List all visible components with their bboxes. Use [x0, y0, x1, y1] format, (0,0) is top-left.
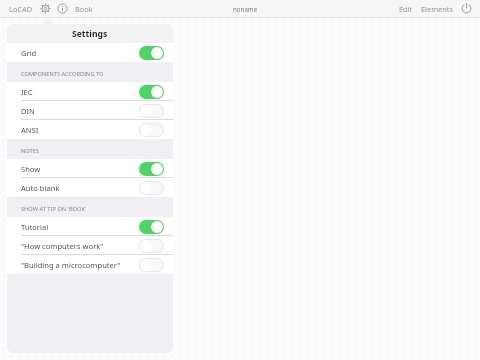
button[interactable]: LoCAD: [5, 1, 37, 17]
staticText: SHOW AT TIP ON 'BOOK': [21, 205, 87, 213]
button[interactable]: Show: [7, 159, 173, 178]
staticText: Settings: [72, 28, 108, 40]
button[interactable]: Power: [458, 0, 475, 17]
button[interactable]: Grid: [7, 43, 173, 62]
staticText: DIN: [21, 106, 35, 116]
staticText: Show: [21, 164, 41, 174]
staticText: "How computers work": [21, 241, 104, 251]
staticText: Book: [75, 4, 93, 14]
button[interactable]: Book: [71, 1, 97, 17]
staticText: LoCAD: [9, 4, 33, 14]
button[interactable]: Info: [54, 0, 71, 17]
button[interactable]: Off: [139, 104, 164, 118]
staticText: noname: [233, 5, 258, 13]
button[interactable]: Off: [139, 258, 164, 272]
button[interactable]: ANSI: [7, 120, 173, 139]
button[interactable]: On: [139, 85, 164, 99]
button[interactable]: Off: [139, 181, 164, 195]
button[interactable]: Elements: [417, 1, 458, 17]
button[interactable]: Off: [139, 239, 164, 253]
button[interactable]: On: [139, 220, 164, 234]
button[interactable]: Edit: [395, 1, 417, 17]
staticText: IEC: [21, 87, 33, 97]
button[interactable]: IEC: [7, 82, 173, 101]
button[interactable]: Tutorial: [7, 217, 173, 236]
button[interactable]: Auto blank: [7, 178, 173, 197]
staticText: Auto blank: [21, 183, 60, 193]
button[interactable]: On: [139, 162, 164, 176]
staticText: Tutorial: [21, 222, 49, 232]
button[interactable]: DIN: [7, 101, 173, 120]
staticText: ANSI: [21, 125, 39, 135]
staticText: NOTES: [21, 147, 40, 155]
button[interactable]: Off: [139, 123, 164, 137]
staticText: COMPONENTS ACCORDING TO: [21, 70, 104, 78]
button[interactable]: On: [139, 46, 164, 60]
button[interactable]: "Building a microcomputer": [7, 255, 173, 274]
button[interactable]: "How computers work": [7, 236, 173, 255]
staticText: Elements: [421, 4, 454, 14]
button[interactable]: Settings: [37, 0, 54, 17]
staticText: Edit: [399, 4, 413, 14]
staticText: "Building a microcomputer": [21, 260, 121, 270]
staticText: Grid: [21, 48, 37, 58]
